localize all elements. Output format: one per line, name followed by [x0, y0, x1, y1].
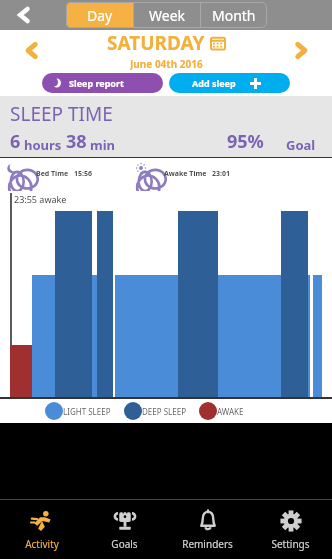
staticText: Awake Time [164, 169, 207, 179]
button[interactable]: Goals [83, 500, 166, 559]
staticText: Goal [286, 136, 316, 154]
staticText: AWAKE [217, 406, 244, 417]
staticText: SLEEP TIME [10, 101, 113, 127]
button[interactable]: Settings [249, 500, 332, 559]
staticText: 6 [10, 129, 21, 154]
staticText: Bed Time [36, 169, 69, 179]
staticText: Month [212, 6, 256, 25]
button[interactable]: Week [134, 2, 200, 28]
staticText: Week [149, 6, 186, 25]
button[interactable]: Previous day [14, 33, 48, 67]
staticText: SATURDAY [107, 30, 205, 56]
staticText: 15:56 [74, 169, 92, 179]
button[interactable]: Reminders [166, 500, 249, 559]
staticText: LIGHT SLEEP [63, 406, 111, 417]
staticText: Activity [25, 537, 59, 551]
staticText: Add sleep [192, 77, 236, 89]
staticText: DEEP SLEEP [142, 406, 186, 417]
staticText: 23:01 [212, 169, 230, 179]
staticText: Sleep report [69, 77, 124, 89]
staticText: Day [87, 6, 113, 25]
button[interactable]: Activity [0, 500, 83, 559]
button[interactable]: Add sleep [169, 73, 290, 93]
button[interactable]: Month [201, 2, 267, 28]
button[interactable]: Day [66, 2, 133, 28]
staticText: hours [24, 136, 62, 154]
button[interactable]: Next day [284, 33, 318, 67]
button[interactable]: Back [6, 0, 42, 30]
staticText: Settings [271, 537, 310, 551]
staticText: Goals [111, 537, 138, 551]
staticText: 38 [66, 129, 87, 154]
staticText: Reminders [182, 537, 233, 551]
staticText: June 04th 2016 [130, 57, 203, 70]
staticText: 95% [227, 129, 264, 154]
staticText: 23:55 awake [14, 193, 67, 205]
staticText: min [90, 136, 116, 154]
button[interactable]: Sleep report [42, 73, 163, 93]
